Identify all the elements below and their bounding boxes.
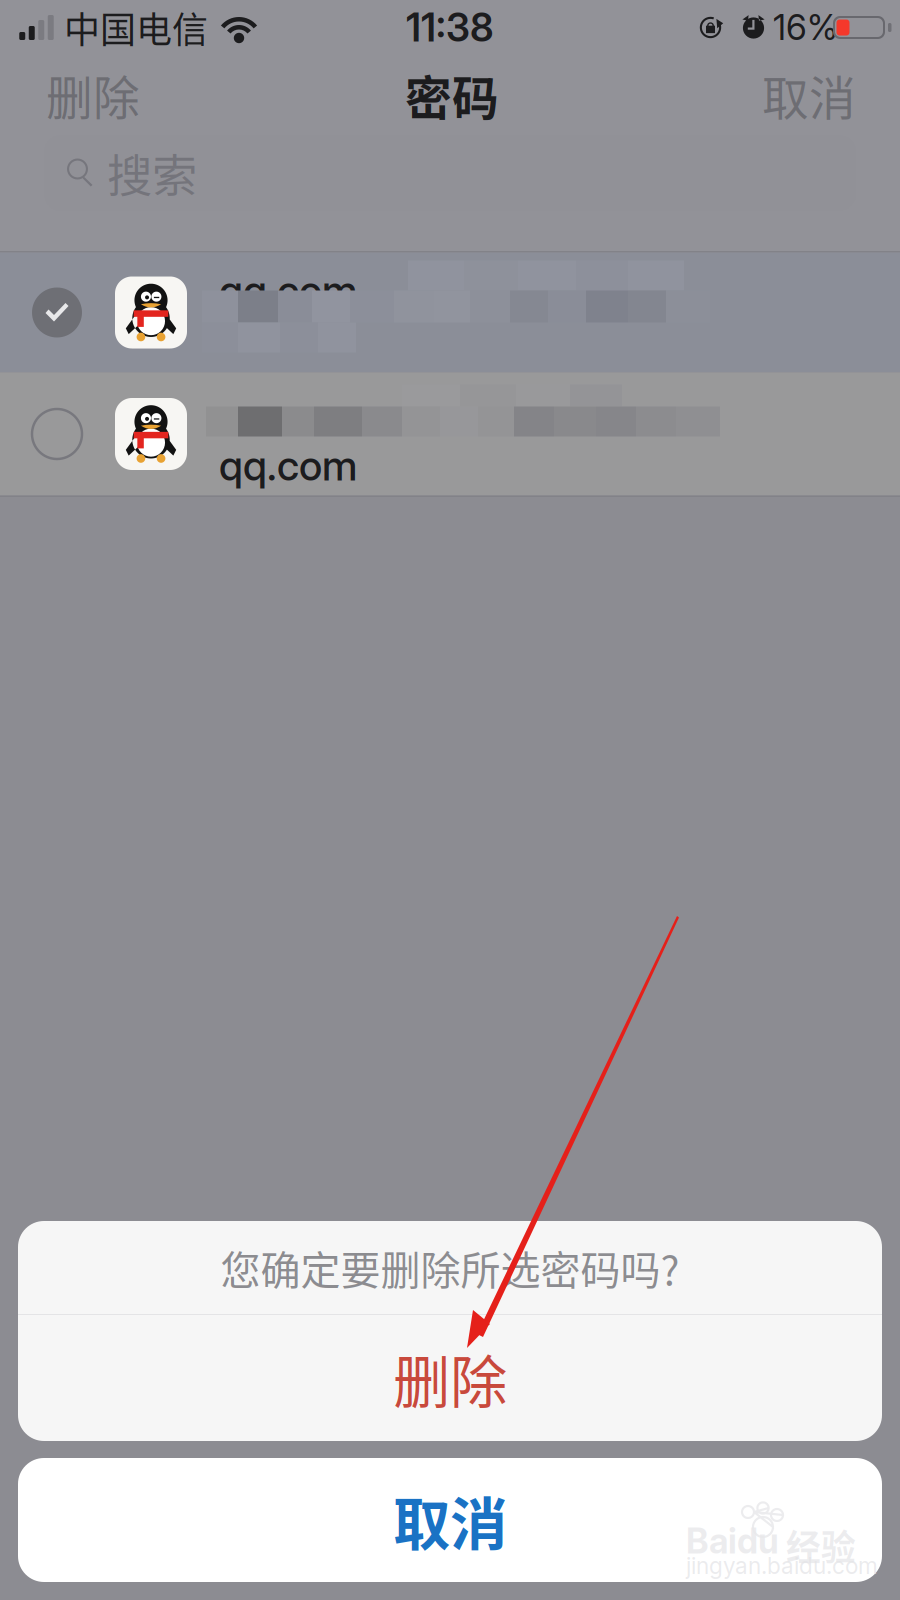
staticText: 16% [773,6,838,48]
staticText: 11:38 [406,4,494,51]
staticText: qq.com [219,440,357,490]
button[interactable]: qq.com 密码，已选中 [0,252,900,372]
staticText: 中国电信 [64,1,208,53]
staticText: 密码 [405,61,499,129]
staticText: jingyan.baidu.com [686,1552,878,1579]
button[interactable]: 删除 [22,49,164,141]
staticText: 您确定要删除所选密码吗? [220,1238,679,1296]
button[interactable]: 搜索 [44,135,856,211]
button[interactable]: 删除 [18,1315,882,1441]
staticText: 取消 [762,61,856,129]
staticText: 取消 [393,1478,507,1561]
staticText: 删除 [393,1336,507,1419]
staticText: qq.com [219,265,357,315]
staticText: 经验 [786,1520,856,1570]
staticText: 删除 [46,61,140,129]
staticText: Baidu [686,1520,779,1562]
button[interactable]: 取消 [740,49,878,141]
button[interactable]: qq.com 密码 [0,372,900,495]
staticText: 搜索 [107,140,197,206]
button[interactable]: 取消 [18,1458,882,1582]
